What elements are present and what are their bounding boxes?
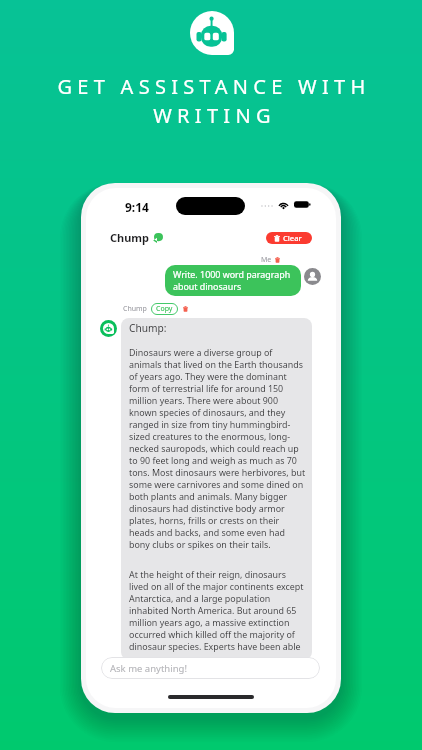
button[interactable]: Ask me anything! [101,657,320,679]
staticText: 9:14 [125,199,149,215]
staticText: Copy [156,304,173,314]
staticText: Write. 1000 word paragraph about dinosau… [173,268,293,293]
staticText: Chump [123,304,147,314]
button[interactable]: Copy [151,303,178,315]
button[interactable]: Profile [304,268,321,285]
button[interactable]: Write. 1000 word paragraph about dinosau… [165,265,301,296]
staticText: Clear [283,233,302,243]
staticText: WRITING [153,102,276,129]
staticText: Me [261,255,272,265]
staticText: Chump [110,230,150,245]
staticText: Ask me anything! [110,662,187,675]
button[interactable]: Clear [266,232,312,244]
button[interactable]: Chump avatar [100,320,117,337]
staticText: Chump: [129,321,167,335]
staticText: GET ASSISTANCE WITH [57,73,371,100]
staticText: At the height of their reign, dinosaurs … [129,568,306,652]
staticText: Dinosaurs were a diverse group of animal… [129,346,306,550]
